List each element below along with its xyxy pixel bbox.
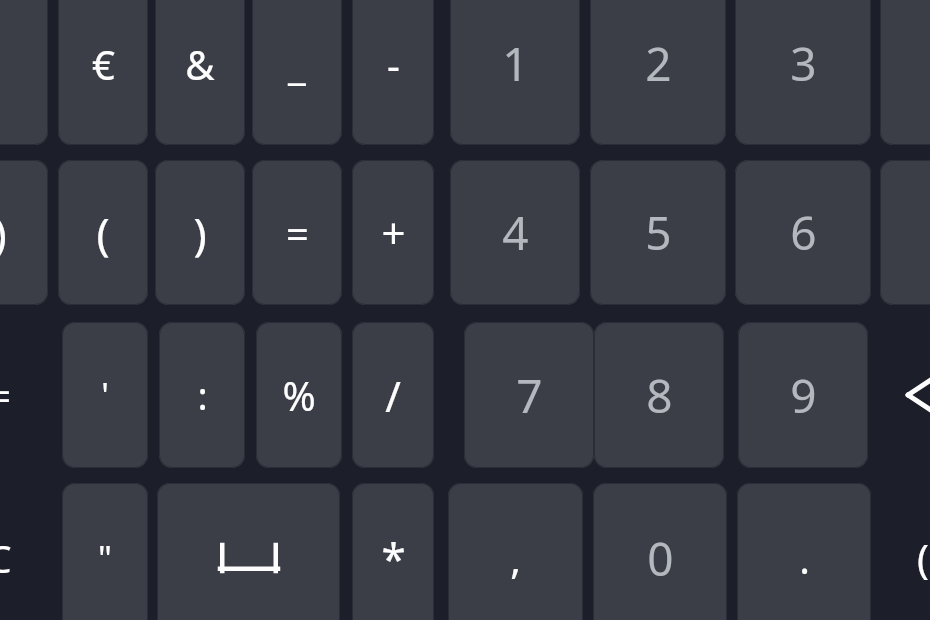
button[interactable]: C <box>0 483 48 620</box>
button[interactable]: : <box>159 322 245 468</box>
button[interactable]: 5 <box>590 160 726 305</box>
staticText: ( <box>917 531 929 585</box>
button[interactable]: = <box>0 322 48 468</box>
button[interactable] <box>880 0 930 145</box>
staticText: - <box>387 37 400 91</box>
staticText: , <box>510 531 521 585</box>
staticText: 7 <box>516 364 543 427</box>
button[interactable]: * <box>352 483 434 620</box>
button[interactable]: " <box>62 483 148 620</box>
button[interactable]: 6 <box>735 160 871 305</box>
staticText: ' <box>101 372 109 418</box>
button[interactable]: , <box>448 483 583 620</box>
staticText: % <box>282 368 316 422</box>
staticText: . <box>799 531 810 585</box>
staticText: = <box>0 369 11 421</box>
staticText: : <box>197 369 208 421</box>
staticText: 9 <box>790 364 817 427</box>
staticText: ( <box>96 203 110 263</box>
button[interactable]: + <box>352 160 434 305</box>
button[interactable]: _ <box>252 0 342 145</box>
button[interactable] <box>880 160 930 305</box>
button[interactable]: 4 <box>450 160 580 305</box>
staticText: € <box>92 37 115 91</box>
button[interactable]: Space <box>157 483 340 620</box>
staticText: + <box>381 204 406 261</box>
staticText: 6 <box>790 201 817 264</box>
button[interactable]: 2 <box>590 0 726 145</box>
button[interactable]: & <box>155 0 245 145</box>
button[interactable]: ( <box>898 483 930 620</box>
staticText: 0 <box>647 527 674 590</box>
staticText: & <box>185 37 215 91</box>
button[interactable]: Backspace <box>898 322 930 468</box>
button[interactable]: = <box>252 160 342 305</box>
button[interactable]: 9 <box>738 322 868 468</box>
button[interactable]: - <box>352 0 434 145</box>
staticText: 2 <box>645 32 672 95</box>
staticText: = <box>286 206 309 260</box>
button[interactable]: ' <box>62 322 148 468</box>
button[interactable]: 1 <box>450 0 580 145</box>
staticText: ) <box>0 203 7 263</box>
button[interactable]: ( <box>58 160 148 305</box>
staticText: _ <box>288 37 306 91</box>
staticText: ) <box>193 203 207 263</box>
button[interactable]: € <box>58 0 148 145</box>
staticText: 4 <box>502 201 529 264</box>
button[interactable] <box>0 0 48 145</box>
button[interactable]: / <box>352 322 434 468</box>
button[interactable]: ) <box>155 160 245 305</box>
button[interactable]: . <box>737 483 871 620</box>
button[interactable]: 7 <box>464 322 594 468</box>
button[interactable]: 0 <box>593 483 727 620</box>
staticText: " <box>98 535 112 581</box>
staticText: 3 <box>790 32 817 95</box>
staticText: 1 <box>502 32 529 95</box>
staticText: 5 <box>645 201 672 264</box>
staticText: / <box>385 367 401 424</box>
button[interactable]: 8 <box>594 322 724 468</box>
button[interactable]: ) <box>0 160 48 305</box>
staticText: 8 <box>646 364 673 427</box>
button[interactable]: 3 <box>735 0 871 145</box>
staticText: C <box>0 532 12 584</box>
button[interactable]: % <box>256 322 342 468</box>
staticText: * <box>381 528 406 588</box>
